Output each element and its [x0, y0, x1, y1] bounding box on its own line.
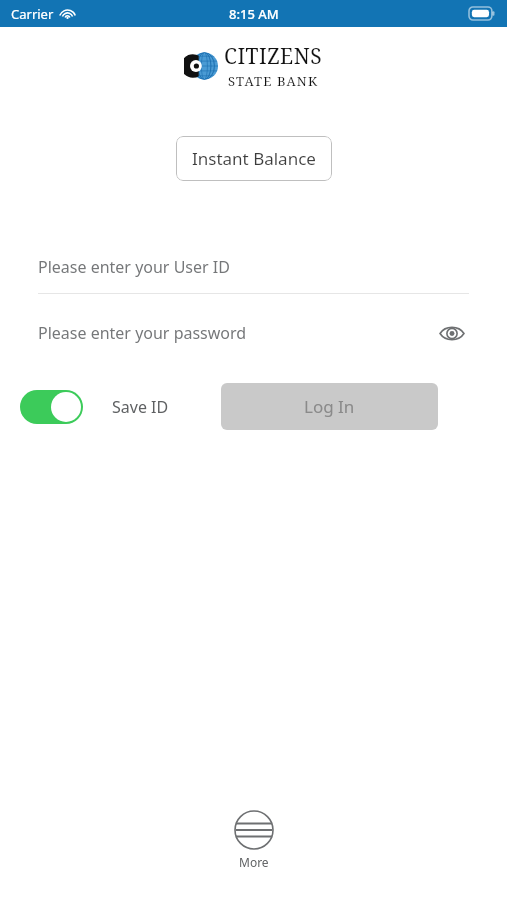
staticText: 8:15 AM	[229, 5, 279, 23]
button[interactable]: Instant Balance	[176, 136, 332, 181]
staticText: Please enter your password	[38, 322, 247, 344]
staticText: Please enter your User ID	[38, 256, 230, 278]
button[interactable]: Please enter your password	[38, 316, 469, 350]
staticText: Carrier	[11, 5, 54, 23]
staticText: CITIZENS	[224, 42, 323, 71]
staticText: STATE BANK	[228, 72, 319, 90]
button[interactable]: More	[222, 808, 286, 872]
button[interactable]: Save ID	[20, 390, 169, 424]
staticText: Save ID	[112, 396, 169, 418]
staticText: Log In	[304, 395, 355, 418]
staticText: More	[239, 854, 269, 870]
button[interactable]: Log In	[221, 383, 438, 430]
button[interactable]: Please enter your User ID	[38, 250, 469, 284]
button[interactable]: Show password	[435, 316, 469, 350]
staticText: Instant Balance	[192, 147, 316, 170]
